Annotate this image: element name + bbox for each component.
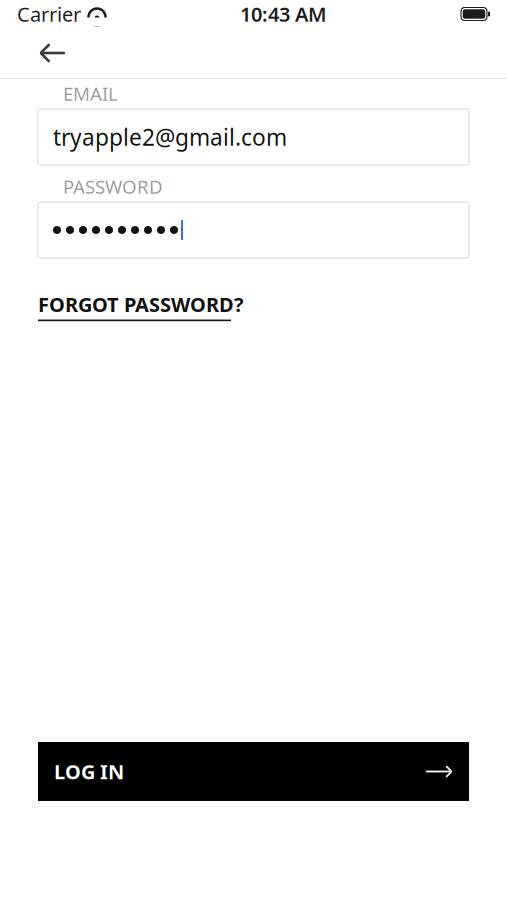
button[interactable]: Back: [27, 28, 79, 78]
staticText: PASSWORD: [63, 174, 163, 199]
staticText: LOG IN: [54, 758, 124, 785]
staticText: tryapple2@gmail.com: [53, 122, 287, 152]
staticText: Carrier: [17, 1, 81, 27]
staticText: EMAIL: [63, 81, 118, 106]
button[interactable]: FORGOT PASSWORD?: [38, 291, 244, 321]
button[interactable]: LOG IN: [38, 742, 469, 801]
staticText: FORGOT PASSWORD?: [38, 291, 244, 318]
staticText: 10:43 AM: [240, 1, 327, 27]
